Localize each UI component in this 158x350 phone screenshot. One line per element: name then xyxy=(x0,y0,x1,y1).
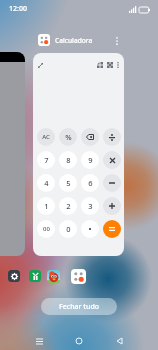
button[interactable]: Game xyxy=(47,270,60,283)
staticText: 4 xyxy=(44,178,49,188)
button[interactable]: Fechar tudo xyxy=(41,298,117,315)
button[interactable]: History xyxy=(94,59,106,71)
button[interactable]: 00 xyxy=(37,220,55,238)
staticText: 3 xyxy=(88,201,93,211)
button[interactable]: Green app xyxy=(29,270,41,282)
staticText: Calculadora xyxy=(55,36,93,45)
button[interactable]: 0 xyxy=(59,220,77,238)
button[interactable]: 9 xyxy=(81,151,99,169)
staticText: 9 xyxy=(88,155,93,165)
staticText: 00 xyxy=(43,225,50,233)
button[interactable]: 2 xyxy=(59,197,77,215)
button[interactable]: add xyxy=(103,197,121,215)
button[interactable]: More options xyxy=(109,33,125,49)
button[interactable]: 4 xyxy=(37,174,55,192)
button[interactable]: mul xyxy=(103,151,121,169)
staticText: 5 xyxy=(66,178,71,188)
button[interactable]: Expand xyxy=(34,59,46,71)
button[interactable]: del xyxy=(81,128,99,146)
button[interactable]: Settings xyxy=(8,270,20,282)
button[interactable]: Back xyxy=(112,334,126,348)
button[interactable]: div xyxy=(103,128,121,146)
staticText: 1 xyxy=(44,201,49,211)
button[interactable]: 3 xyxy=(81,197,99,215)
button[interactable]: Calculator xyxy=(71,269,86,284)
button[interactable]: Recents xyxy=(32,334,46,348)
button[interactable]: More xyxy=(112,59,124,71)
button[interactable]: Home xyxy=(72,334,86,348)
button[interactable]: AC xyxy=(37,128,55,146)
button[interactable]: 6 xyxy=(81,174,99,192)
staticText: % xyxy=(65,132,72,142)
button[interactable]: sub xyxy=(103,174,121,192)
staticText: 6 xyxy=(88,178,93,188)
button[interactable]: = xyxy=(103,220,121,238)
button[interactable]: % xyxy=(59,128,77,146)
staticText: Fechar tudo xyxy=(59,302,100,312)
button[interactable]: 1 xyxy=(37,197,55,215)
button[interactable]: Scientific xyxy=(104,59,116,71)
staticText: 8 xyxy=(66,155,71,165)
staticText: 0 xyxy=(66,224,71,234)
staticText: 2 xyxy=(66,201,71,211)
staticText: AC xyxy=(42,133,50,141)
button[interactable]: Expand xyxy=(33,53,124,256)
button[interactable]: dot xyxy=(81,220,99,238)
button[interactable]: 7 xyxy=(37,151,55,169)
staticText: 7 xyxy=(44,155,49,165)
staticText: 12:00 xyxy=(9,4,27,14)
button[interactable]: 8 xyxy=(59,151,77,169)
button[interactable]: 5 xyxy=(59,174,77,192)
